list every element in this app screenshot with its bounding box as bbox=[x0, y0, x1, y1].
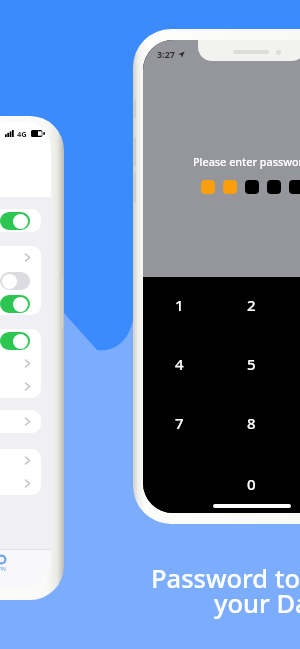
staticText: 0 bbox=[247, 474, 256, 492]
staticText: Please enter password bbox=[193, 154, 300, 169]
button[interactable]: 2 bbox=[215, 295, 287, 313]
button[interactable] bbox=[0, 410, 41, 433]
staticText: Password to protect bbox=[151, 561, 300, 596]
button[interactable] bbox=[0, 329, 41, 352]
button[interactable]: 8 bbox=[215, 413, 287, 431]
button[interactable] bbox=[0, 269, 41, 292]
staticText: 1 bbox=[175, 295, 184, 313]
staticText: 4 bbox=[175, 354, 184, 372]
staticText: your Data bbox=[214, 586, 300, 621]
button[interactable] bbox=[0, 246, 41, 269]
button[interactable] bbox=[0, 209, 41, 232]
button[interactable]: 7 bbox=[143, 413, 215, 431]
button[interactable]: 5 bbox=[215, 354, 287, 372]
staticText: 4G bbox=[17, 129, 27, 138]
button[interactable]: 0 bbox=[215, 474, 287, 492]
staticText: 5 bbox=[247, 354, 256, 372]
button[interactable] bbox=[0, 352, 41, 375]
staticText: 3:27 bbox=[157, 48, 175, 60]
staticText: VPN bbox=[0, 566, 6, 573]
staticText: 2 bbox=[247, 295, 256, 313]
staticText: 7 bbox=[175, 413, 184, 431]
button[interactable]: 1 bbox=[143, 295, 215, 313]
button[interactable] bbox=[0, 292, 41, 315]
button[interactable]: 4 bbox=[143, 354, 215, 372]
button[interactable] bbox=[0, 449, 41, 472]
staticText: 8 bbox=[247, 413, 256, 431]
button[interactable]: VPN tab bbox=[0, 555, 6, 573]
button[interactable] bbox=[143, 474, 215, 492]
button[interactable] bbox=[0, 472, 41, 495]
button[interactable] bbox=[0, 375, 41, 398]
